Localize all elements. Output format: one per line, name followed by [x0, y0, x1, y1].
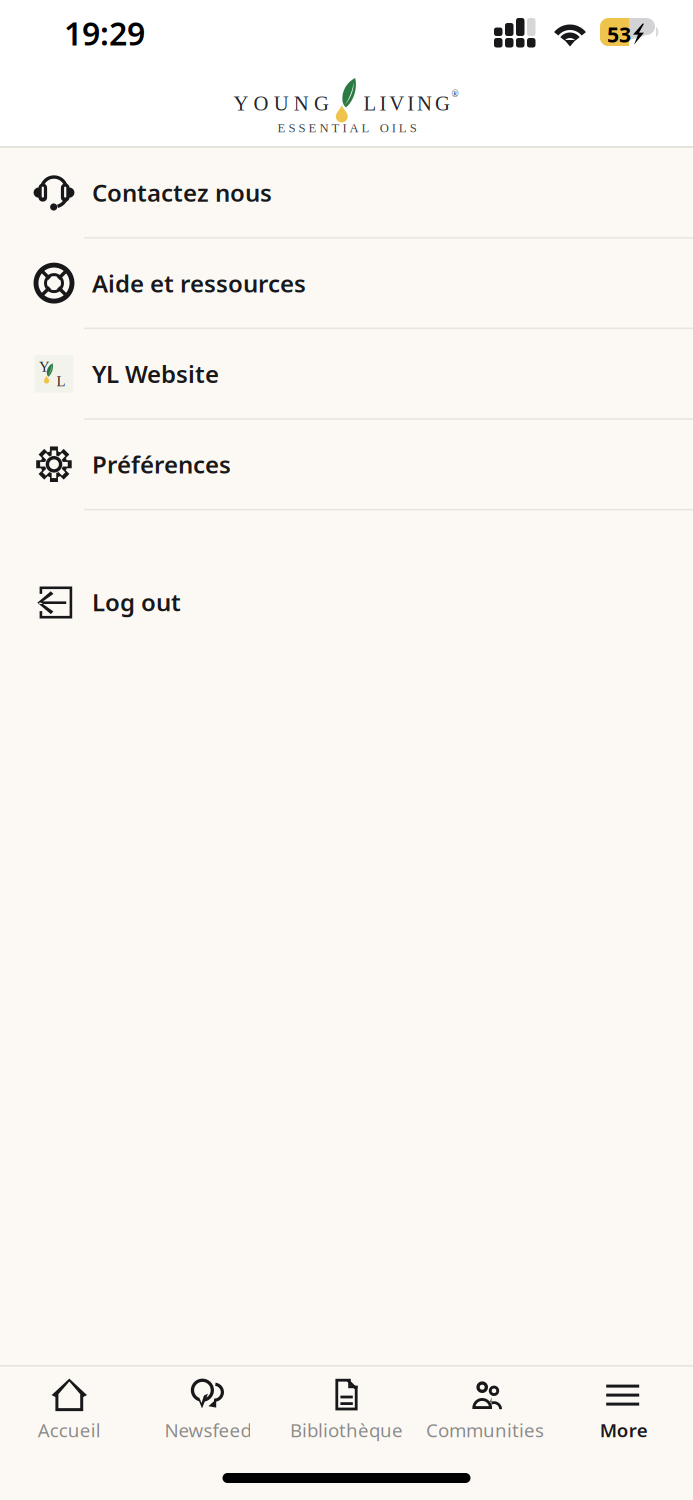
staticText: L [361, 121, 369, 135]
staticText: E [277, 121, 285, 135]
staticText: I [392, 121, 396, 135]
staticText: O [254, 92, 269, 115]
staticText: N [417, 92, 432, 115]
staticText: Log out [92, 586, 181, 618]
button[interactable]: Communities [416, 1367, 554, 1453]
staticText: Y [39, 359, 50, 375]
staticText: E [308, 121, 316, 135]
staticText: 53 [607, 20, 631, 48]
staticText: I [379, 92, 386, 115]
button[interactable]: Bibliothèque [277, 1367, 416, 1453]
staticText: Newsfeed [164, 1418, 251, 1442]
button[interactable]: Log out [0, 557, 693, 646]
staticText: V [389, 92, 404, 115]
staticText: U [274, 92, 289, 115]
staticText: More [600, 1418, 648, 1442]
staticText: G [435, 92, 450, 115]
button[interactable]: Contactez nous [0, 148, 693, 239]
staticText: S [298, 121, 305, 135]
button[interactable]: Y [0, 329, 693, 420]
button[interactable]: Préférences [0, 420, 693, 510]
staticText: G [314, 92, 329, 115]
staticText: I [407, 92, 414, 115]
staticText: Contactez nous [92, 177, 272, 208]
staticText: S [288, 121, 295, 135]
staticText: L [363, 92, 376, 115]
staticText: T [331, 121, 339, 135]
button[interactable]: Accueil [0, 1367, 139, 1453]
staticText: YL Website [92, 358, 219, 390]
staticText: N [294, 92, 309, 115]
staticText: O [380, 121, 389, 135]
staticText: S [410, 121, 417, 135]
staticText: Aide et ressources [92, 267, 306, 299]
button[interactable]: More [554, 1367, 693, 1453]
staticText: Accueil [38, 1418, 101, 1442]
staticText: N [319, 121, 328, 135]
staticText: A [349, 121, 358, 135]
staticText: Préférences [92, 448, 231, 480]
staticText: I [342, 121, 346, 135]
staticText: L [56, 373, 65, 389]
staticText: ® [451, 89, 458, 99]
staticText: Y [233, 92, 248, 115]
staticText: Bibliothèque [290, 1418, 403, 1442]
staticText: 19:29 [64, 12, 145, 54]
staticText: Communities [426, 1418, 544, 1442]
staticText: L [399, 121, 407, 135]
button[interactable]: Newsfeed [139, 1367, 277, 1453]
button[interactable]: Aide et ressources [0, 239, 693, 329]
